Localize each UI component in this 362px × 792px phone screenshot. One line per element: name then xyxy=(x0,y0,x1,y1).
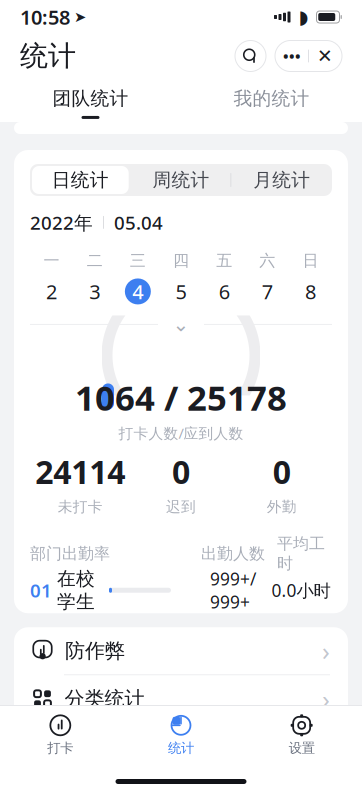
staticText: 日统计 xyxy=(52,168,109,191)
staticText: 五 xyxy=(216,251,232,270)
button[interactable]: 更多与关闭 xyxy=(275,40,342,71)
staticText: 7 xyxy=(262,278,273,305)
staticText: 分类统计 xyxy=(64,686,144,711)
staticText: 防作弊 xyxy=(65,638,125,663)
staticText: ➤ xyxy=(74,9,86,25)
staticText: 统计 xyxy=(20,39,76,73)
button[interactable]: 我的统计 xyxy=(181,81,362,119)
staticText: 二 xyxy=(87,251,103,270)
button[interactable]: 搜索 xyxy=(234,39,267,72)
button[interactable]: 6 xyxy=(203,276,246,306)
staticText: › xyxy=(322,634,330,667)
staticText: 6 xyxy=(219,278,230,305)
staticText: 四 xyxy=(173,251,189,270)
button[interactable]: 打卡 xyxy=(0,711,121,759)
staticText: 日 xyxy=(302,251,318,270)
staticText: 05.04 xyxy=(114,210,163,235)
staticText: ••• xyxy=(283,46,301,66)
staticText: 1064 / 25178 xyxy=(75,374,287,420)
staticText: 出勤人数 xyxy=(201,544,265,563)
staticText: 0.0小时 xyxy=(271,579,330,602)
staticText: 未打卡 xyxy=(58,498,103,516)
staticText: 打卡人数/应到人数 xyxy=(118,423,243,443)
staticText: 部门出勤率 xyxy=(30,544,110,563)
staticText: 10:58 xyxy=(20,4,70,30)
staticText: 六 xyxy=(259,251,275,270)
staticText: 24114 xyxy=(35,450,125,493)
button[interactable]: 防作弊 xyxy=(14,627,348,674)
staticText: 我的统计 xyxy=(233,87,309,110)
staticText: 2 xyxy=(46,278,57,305)
button[interactable]: 5 xyxy=(159,276,202,306)
staticText: 0 xyxy=(172,450,190,493)
staticText: 月统计 xyxy=(253,168,310,191)
staticText: ✕ xyxy=(317,45,333,67)
button[interactable]: 7 xyxy=(246,276,289,306)
button[interactable]: 分类统计 xyxy=(14,675,348,722)
button[interactable]: 8 xyxy=(289,276,332,306)
staticText: ⌄ xyxy=(172,313,189,336)
staticText: 设置 xyxy=(289,740,315,756)
staticText: 平均工时 xyxy=(277,534,325,573)
button[interactable]: 01 xyxy=(30,573,332,607)
button[interactable]: 周统计 xyxy=(131,164,231,196)
staticText: 8 xyxy=(305,278,316,305)
button[interactable]: 4 xyxy=(116,276,159,306)
staticText: 迟到 xyxy=(166,498,196,516)
staticText: 团队统计 xyxy=(52,87,128,110)
button[interactable]: 展开日历 xyxy=(158,316,204,332)
button[interactable]: 设置 xyxy=(241,711,362,759)
staticText: › xyxy=(322,682,330,715)
staticText: ◗ xyxy=(298,6,308,28)
staticText: 4 xyxy=(132,278,143,305)
button[interactable]: 2 xyxy=(30,276,73,306)
staticText: 2022年 xyxy=(30,210,93,235)
button[interactable]: 统计 xyxy=(121,711,241,759)
staticText: 在校学生 xyxy=(57,567,95,613)
staticText: 0 xyxy=(273,450,291,493)
staticText: 周统计 xyxy=(152,168,209,191)
button[interactable]: 团队统计 xyxy=(0,81,181,119)
staticText: 3 xyxy=(89,278,100,305)
button[interactable]: 3 xyxy=(73,276,116,306)
staticText: 统计 xyxy=(168,740,194,756)
button[interactable]: 日统计 xyxy=(30,164,131,196)
staticText: 三 xyxy=(130,251,146,270)
staticText: 999+/999+ xyxy=(210,567,256,613)
staticText: 01 xyxy=(30,578,52,603)
staticText: 5 xyxy=(175,278,186,305)
staticText: 外勤 xyxy=(267,498,297,516)
staticText: 打卡 xyxy=(47,740,73,756)
button[interactable]: 月统计 xyxy=(231,164,332,196)
staticText: 一 xyxy=(44,251,60,270)
